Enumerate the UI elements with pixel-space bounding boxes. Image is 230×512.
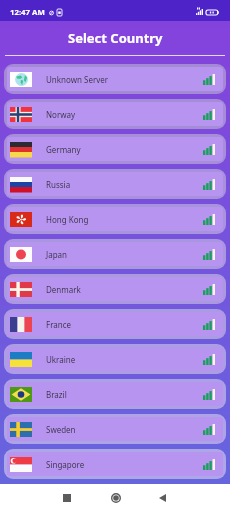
button[interactable]: Russia <box>7 172 223 196</box>
button[interactable]: France <box>7 312 223 336</box>
button[interactable]: Back <box>152 488 172 508</box>
button[interactable]: Norway <box>7 102 223 126</box>
staticText: Ukraine <box>46 354 76 365</box>
staticText: Russia <box>46 179 71 190</box>
staticText: Singapore <box>46 459 85 470</box>
button[interactable]: Japan <box>7 242 223 266</box>
staticText: Japan <box>46 249 68 260</box>
button[interactable]: Germany <box>7 137 223 161</box>
button[interactable]: Brazil <box>7 382 223 406</box>
button[interactable]: Recent apps <box>57 488 77 508</box>
button[interactable]: Denmark <box>7 277 223 301</box>
staticText: Norway <box>46 109 76 120</box>
staticText: Sweden <box>46 424 76 435</box>
button[interactable]: Hong Kong <box>7 207 223 231</box>
button[interactable]: Singapore <box>7 452 223 476</box>
staticText: France <box>46 319 72 330</box>
button[interactable]: Unknown Server <box>7 67 223 91</box>
staticText: Denmark <box>46 284 81 295</box>
staticText: Hong Kong <box>46 214 89 225</box>
staticText: Brazil <box>46 389 67 400</box>
button[interactable]: Ukraine <box>7 347 223 371</box>
staticText: 12:47 AM <box>10 7 45 18</box>
staticText: Select Country <box>68 29 163 47</box>
button[interactable]: Home <box>105 487 127 509</box>
staticText: Unknown Server <box>46 74 109 85</box>
button[interactable]: Sweden <box>7 417 223 441</box>
staticText: Germany <box>46 144 81 155</box>
